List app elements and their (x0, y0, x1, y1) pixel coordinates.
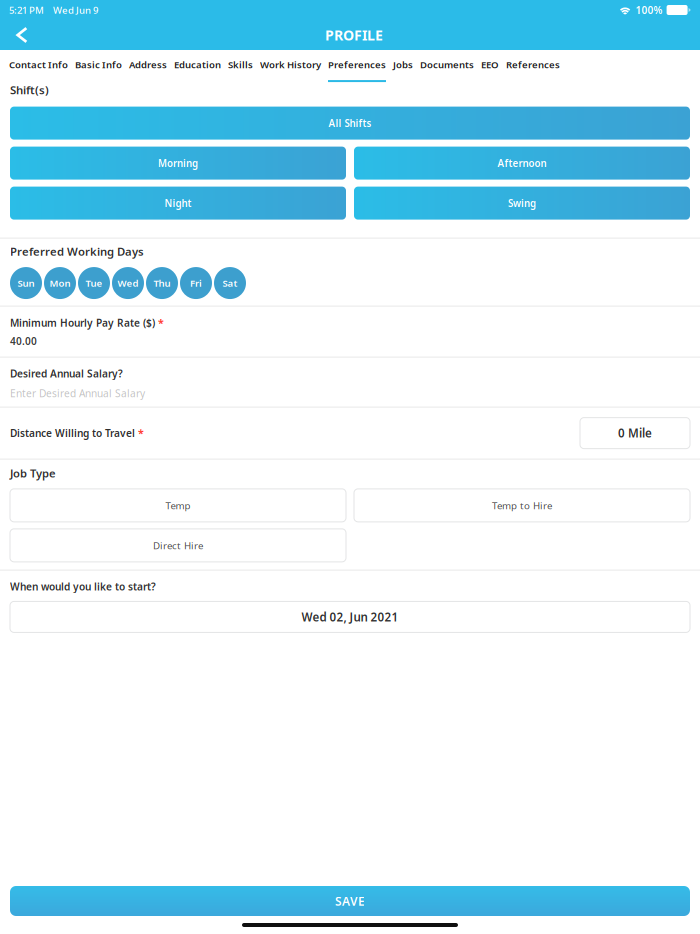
staticText: Shift(s) (10, 82, 49, 98)
staticText: 40.00 (10, 334, 37, 348)
button[interactable]: Sun (10, 267, 42, 299)
button[interactable]: Wed 02, Jun 2021 (10, 601, 690, 632)
button[interactable]: Jobs (393, 58, 413, 82)
staticText: Distance Willing to Travel (10, 426, 135, 440)
button[interactable]: Documents (420, 58, 474, 82)
staticText: All Shifts (328, 116, 371, 130)
staticText: Direct Hire (153, 539, 203, 552)
button[interactable]: Skills (228, 58, 253, 82)
button[interactable]: 0 Mile (580, 418, 690, 449)
staticText: Sun (17, 276, 34, 290)
staticText: Temp to Hire (492, 499, 552, 512)
button[interactable]: Address (129, 58, 167, 82)
staticText: Preferences (328, 58, 386, 71)
staticText: Afternoon (497, 156, 546, 170)
button[interactable]: Swing (354, 187, 690, 220)
staticText: Wed 02, Jun 2021 (301, 609, 398, 625)
button[interactable]: Night (10, 187, 346, 220)
button[interactable]: Wed (112, 267, 144, 299)
button[interactable]: Thu (146, 267, 178, 299)
button[interactable]: Basic Info (75, 58, 122, 82)
staticText: Night (164, 196, 191, 210)
staticText: 0 Mile (618, 425, 652, 441)
staticText: Desired Annual Salary? (10, 367, 123, 380)
staticText: Wed Jun 9 (53, 3, 98, 17)
staticText: When would you like to start? (10, 580, 156, 593)
button[interactable]: Direct Hire (10, 529, 346, 562)
button[interactable]: Morning (10, 147, 346, 180)
staticText: Enter Desired Annual Salary (10, 386, 145, 400)
staticText: Mon (49, 276, 70, 290)
staticText: Preferred Working Days (10, 244, 144, 259)
staticText: Job Type (10, 466, 56, 481)
staticText: Basic Info (75, 58, 122, 71)
staticText: 100% (636, 3, 663, 17)
staticText: References (506, 58, 560, 71)
staticText: EEO (481, 58, 499, 71)
staticText: Swing (508, 196, 536, 210)
button[interactable]: All Shifts (10, 107, 690, 140)
button[interactable]: SAVE (10, 886, 690, 916)
button[interactable]: References (506, 58, 560, 82)
staticText: Work History (260, 58, 321, 71)
staticText: Documents (420, 58, 474, 71)
button[interactable]: Mon (44, 267, 76, 299)
button[interactable]: EEO (481, 58, 499, 82)
button[interactable]: Temp to Hire (354, 489, 690, 522)
button[interactable]: Fri (180, 267, 212, 299)
staticText: Jobs (393, 58, 413, 71)
button[interactable]: Afternoon (354, 147, 690, 180)
staticText: Morning (158, 156, 198, 170)
button[interactable]: Tue (78, 267, 110, 299)
button[interactable]: Temp (10, 489, 346, 522)
staticText: Thu (153, 276, 170, 290)
button[interactable]: Work History (260, 58, 321, 82)
staticText: SAVE (335, 893, 365, 909)
button[interactable]: Education (174, 58, 221, 82)
staticText: Minimum Hourly Pay Rate ($) (10, 316, 155, 330)
staticText: Sat (222, 276, 237, 290)
staticText: Address (129, 58, 167, 71)
button[interactable]: Preferences (328, 58, 386, 82)
staticText: Contact Info (9, 58, 68, 71)
staticText: Wed (117, 276, 138, 290)
staticText: * (158, 316, 164, 330)
staticText: Tue (85, 276, 102, 290)
staticText: Temp (165, 499, 190, 512)
staticText: Skills (228, 58, 253, 71)
button[interactable]: Sat (214, 267, 246, 299)
staticText: 5:21 PM (9, 3, 44, 17)
staticText: Education (174, 58, 221, 71)
staticText: PROFILE (325, 25, 383, 45)
button[interactable]: Contact Info (9, 58, 68, 82)
staticText: Fri (190, 276, 202, 290)
button[interactable]: Back (8, 20, 36, 50)
staticText: * (138, 426, 144, 440)
